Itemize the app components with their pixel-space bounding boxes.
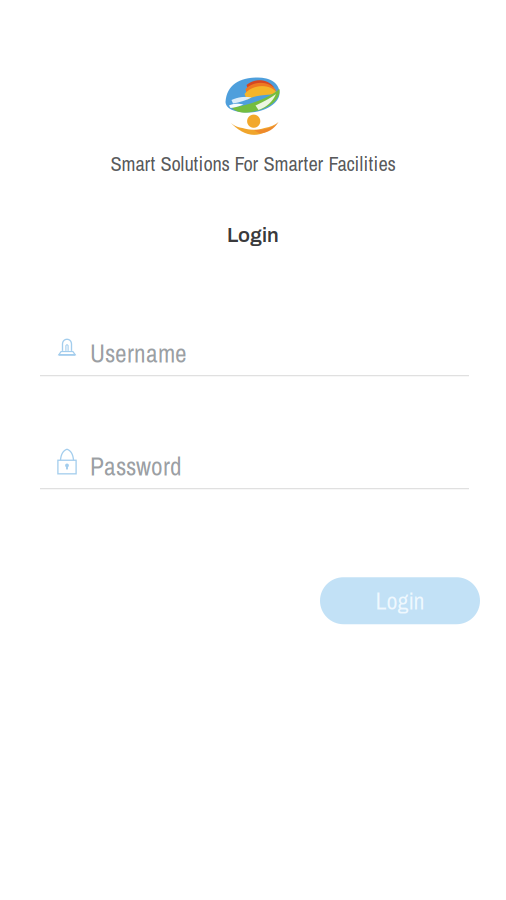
button[interactable]: Password	[40, 454, 469, 489]
button[interactable]: Username	[40, 341, 469, 376]
staticText: Login	[227, 224, 279, 246]
staticText: Login	[375, 585, 424, 617]
staticText: Smart Solutions For Smarter Facilities	[110, 150, 395, 177]
button[interactable]: Login	[320, 577, 480, 624]
staticText: Username	[90, 336, 187, 370]
staticText: Password	[90, 449, 182, 483]
